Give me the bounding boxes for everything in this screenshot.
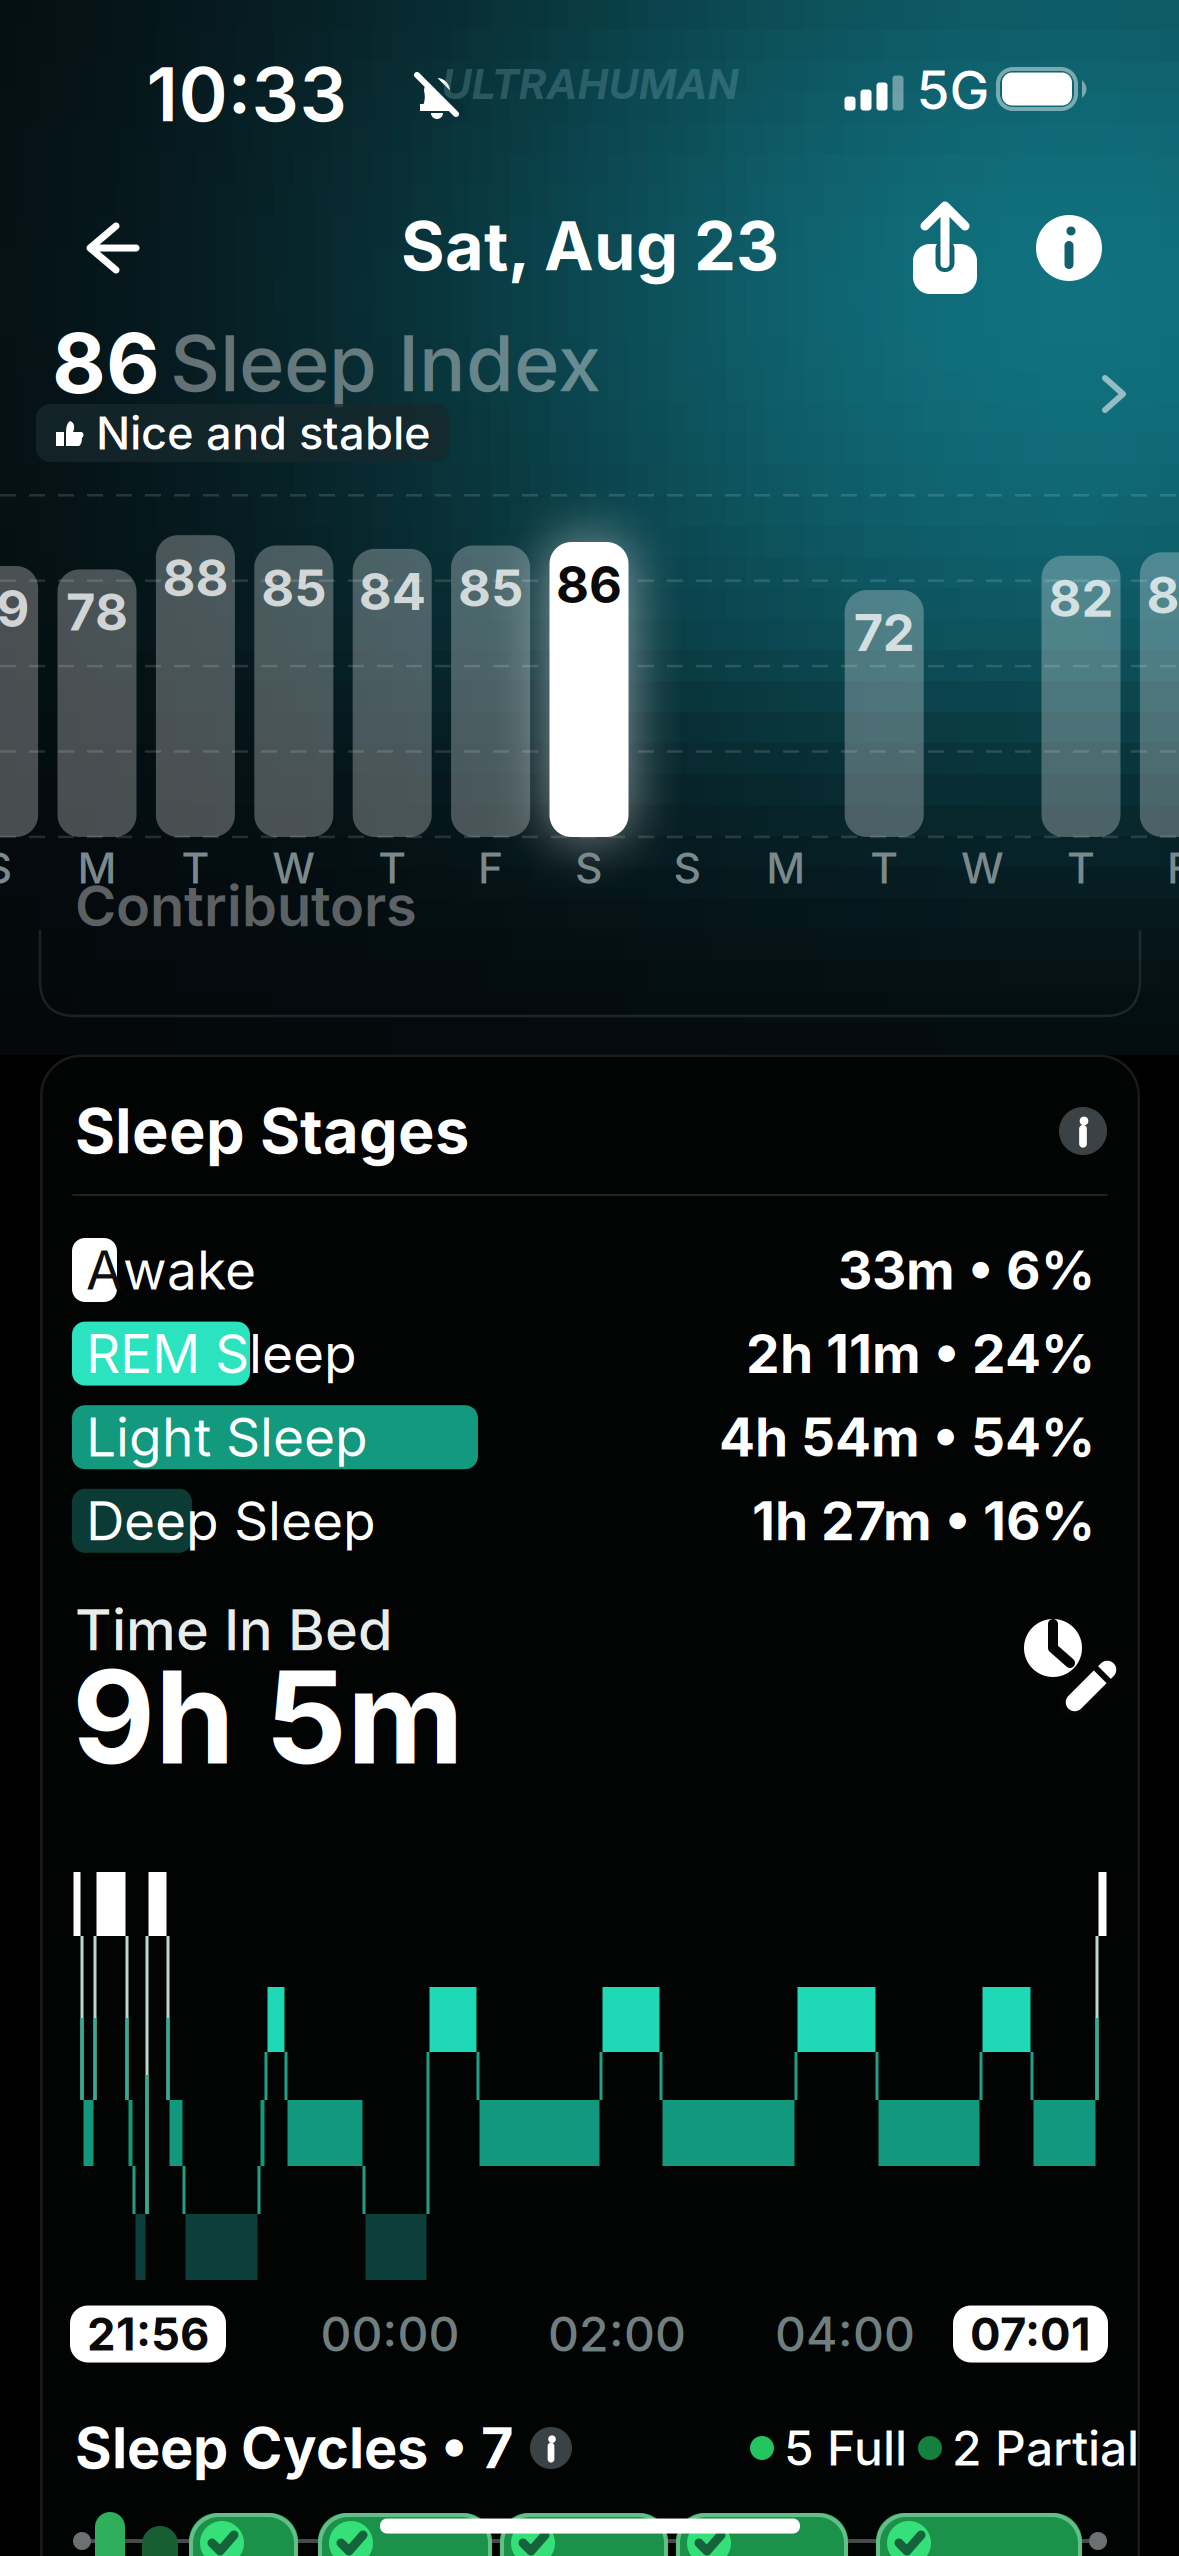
staticText: Light Sleep (86, 1405, 368, 1469)
staticText: ULTRAHUMAN (442, 59, 738, 109)
button[interactable]: T sleep index 88 (156, 535, 235, 837)
button[interactable]: F sleep index 85 (451, 545, 530, 837)
staticText: 85 (458, 557, 523, 619)
button[interactable]: T sleep index 82 (1041, 556, 1120, 837)
staticText: F (478, 842, 503, 894)
staticText: W (961, 842, 1004, 894)
button[interactable]: S sleep index 86 (549, 542, 628, 837)
staticText: S (673, 842, 701, 894)
button[interactable]: T sleep index 84 (353, 549, 432, 837)
staticText: 02:00 (548, 2305, 686, 2363)
staticText: 2 Partial (952, 2419, 1139, 2477)
staticText: Time In Bed (75, 1596, 393, 1664)
staticText: 86 (52, 313, 160, 413)
staticText: T (1067, 842, 1095, 894)
button[interactable]: M sleep index 78 (57, 569, 136, 837)
staticText: 5G (916, 58, 989, 122)
staticText: A (86, 1238, 123, 1302)
staticText: S (575, 842, 603, 894)
button[interactable]: Back (78, 220, 142, 276)
staticText: 9h 5m (72, 1640, 464, 1794)
staticText: 78 (66, 581, 128, 643)
staticText: Sleep Index (170, 316, 601, 410)
button[interactable]: Sleep stages info (1059, 1107, 1107, 1155)
button[interactable]: Wake time 07:01 (953, 2305, 1108, 2362)
staticText: Nice and stable (96, 406, 431, 460)
staticText: 00:00 (320, 2305, 459, 2363)
staticText: Sat, Aug 23 (401, 206, 779, 286)
staticText: 72 (854, 602, 915, 663)
staticText: W (272, 842, 315, 894)
button[interactable]: T sleep index 72 (845, 590, 924, 837)
staticText: wake (123, 1238, 256, 1302)
staticText: F (1167, 842, 1179, 894)
button[interactable]: Sleep Index details (1101, 374, 1127, 414)
staticText: 5 Full (784, 2419, 907, 2477)
button[interactable]: F sleep index 83 (1140, 552, 1179, 837)
staticText: T (870, 842, 898, 894)
staticText: 4h 54m • 54% (719, 1405, 1095, 1469)
staticText: 10:33 (146, 49, 347, 139)
staticText: Sleep Cycles • 7 (75, 2414, 514, 2482)
staticText: 82 (1048, 568, 1113, 629)
staticText: S (0, 842, 13, 894)
staticText: 1h 27m • 16% (752, 1488, 1095, 1553)
button[interactable]: S sleep index 79 (0, 566, 38, 837)
staticText: 21:56 (87, 2307, 209, 2361)
button[interactable]: W sleep index 85 (254, 545, 333, 837)
staticText: 85 (261, 557, 326, 619)
staticText: 83 (1146, 564, 1179, 626)
button[interactable]: Bed time 21:56 (70, 2305, 226, 2362)
staticText: 07:01 (970, 2307, 1091, 2361)
staticText: 33m • 6% (838, 1238, 1095, 1302)
staticText: Contributors (75, 872, 417, 940)
button[interactable]: Share (907, 202, 983, 298)
staticText: Deep Sleep (86, 1488, 376, 1553)
button[interactable]: Sleep cycles info (530, 2427, 572, 2469)
staticText: REM Sleep (86, 1321, 357, 1386)
staticText: 84 (359, 561, 426, 622)
staticText: 88 (162, 547, 228, 608)
staticText: T (378, 842, 406, 894)
staticText: Sleep Stages (75, 1094, 469, 1168)
button[interactable]: Info (1035, 214, 1103, 282)
staticText: 86 (556, 554, 622, 615)
staticText: 2h 11m • 24% (746, 1321, 1095, 1386)
button[interactable]: Edit time in bed (1018, 1615, 1108, 1705)
staticText: 79 (0, 578, 30, 639)
staticText: M (766, 842, 805, 894)
staticText: 04:00 (775, 2305, 915, 2363)
staticText: M (77, 842, 116, 894)
staticText: T (181, 842, 209, 894)
